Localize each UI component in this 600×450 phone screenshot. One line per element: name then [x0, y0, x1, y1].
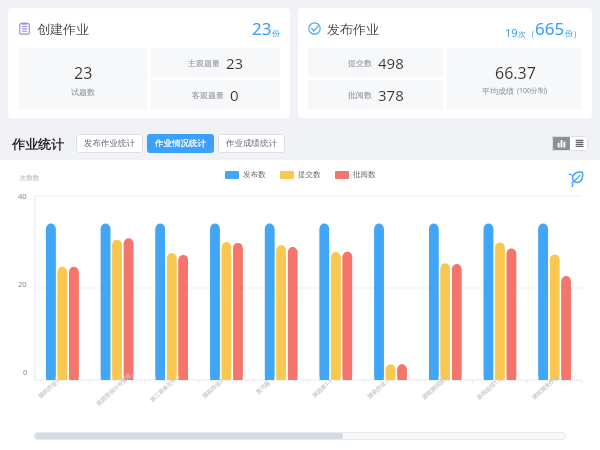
- staticText: 随机作业…: [366, 376, 391, 400]
- staticText: 665: [535, 17, 565, 40]
- staticText: 20: [18, 279, 27, 289]
- staticText: 平均成绩: [482, 86, 514, 96]
- staticText: 批阅数: [353, 170, 376, 179]
- staticText: 作业成绩统计: [226, 138, 277, 149]
- staticText: 发布数: [243, 170, 266, 179]
- staticText: 提交数: [298, 170, 321, 179]
- staticText: 份: [272, 28, 280, 38]
- staticText: 作业统计: [12, 136, 64, 152]
- staticText: 阶段总结1…: [475, 375, 503, 401]
- staticText: (100分制): [517, 86, 548, 96]
- staticText: 试题数: [71, 87, 95, 97]
- staticText: 课程期末作业: [531, 374, 560, 401]
- staticText: 次数数: [20, 174, 40, 182]
- staticText: 随机作业2: [201, 376, 225, 400]
- staticText: 发布作业统计: [84, 138, 135, 149]
- button[interactable]: 作业情况统计: [147, 134, 214, 153]
- staticText: 23: [226, 53, 244, 73]
- button[interactable]: 作业成绩统计: [218, 134, 285, 153]
- staticText: 第四章1-1: [310, 377, 334, 399]
- button[interactable]: 发布作业统计: [76, 134, 143, 153]
- staticText: 份: [565, 28, 573, 38]
- staticText: ）: [573, 28, 582, 39]
- staticText: 0: [230, 85, 239, 105]
- staticText: 66.37: [495, 62, 536, 84]
- staticText: 客观题量: [192, 90, 224, 100]
- staticText: 23: [252, 17, 272, 40]
- staticText: 课程测试统计: [421, 374, 450, 401]
- button[interactable]: Bar chart view: [552, 136, 570, 151]
- staticText: 发布作业: [327, 21, 379, 37]
- staticText: 19: [505, 25, 518, 40]
- staticText: 498: [378, 53, 404, 73]
- staticText: 23: [74, 62, 93, 84]
- staticText: 378: [378, 85, 404, 105]
- staticText: 0: [23, 367, 28, 377]
- staticText: 第三章单元中…: [148, 372, 182, 404]
- button[interactable]: List view: [570, 136, 588, 151]
- staticText: 复习题: [255, 379, 272, 396]
- staticText: 创建作业: [37, 21, 89, 37]
- staticText: 40: [18, 191, 27, 201]
- staticText: 次: [518, 29, 526, 39]
- staticText: 随机作业1: [37, 376, 61, 400]
- staticText: 批阅数: [348, 90, 372, 100]
- staticText: 作业情况统计: [155, 138, 206, 149]
- button[interactable]: Scroll: [34, 432, 343, 440]
- staticText: （: [526, 28, 535, 39]
- staticText: 主观题量: [188, 58, 220, 68]
- staticText: 第四章设计与管理…: [95, 369, 136, 407]
- staticText: 提交数: [348, 58, 372, 68]
